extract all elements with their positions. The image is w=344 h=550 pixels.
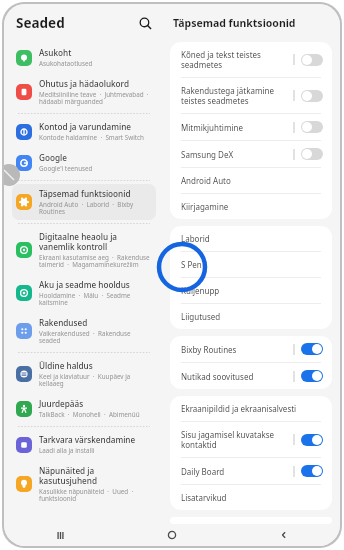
button[interactable]: Nutikad soovitused [170, 363, 332, 389]
staticText: Android Auto · Laborid · Bixby Routines [39, 200, 152, 216]
staticText: Kasulikke näpunäiteid · Uued · funktsioo… [39, 487, 152, 503]
button[interactable]: Täpsemad funktsioonid [12, 184, 156, 220]
button[interactable]: Aku ja seadme hooldus [12, 275, 156, 311]
button[interactable]: Toggle [301, 370, 323, 382]
staticText: Laadi alla ja installi [39, 446, 95, 455]
staticText: Meditsiiniline teave · Juhtmevabad · häd… [39, 90, 152, 106]
staticText: Liigutused [181, 311, 221, 322]
button[interactable]: Liigutused [170, 304, 332, 329]
button[interactable]: Google [12, 148, 156, 177]
button[interactable]: Toggle [301, 343, 323, 355]
staticText: Laborid [181, 233, 210, 244]
staticText: Ohutus ja hädaolukord [39, 78, 129, 89]
button[interactable]: Back [228, 524, 340, 546]
button[interactable]: Näpunäited ja kasutusjuhend [12, 461, 156, 507]
staticText: Aku ja seadme hooldus [39, 279, 130, 290]
button[interactable]: Laborid [170, 226, 332, 251]
staticText: Asukohataotlused [39, 59, 93, 68]
button[interactable]: Kõned ja tekst teistes seadmetes [170, 42, 332, 77]
button[interactable]: Rakendused [12, 313, 156, 349]
staticText: Sisu jagamisel kuvatakse kontaktid [181, 429, 287, 450]
staticText: Täpsemad funktsioonid [39, 188, 131, 199]
button[interactable]: Toggle [301, 148, 323, 160]
staticText: Täpsemad funktsioonid [173, 16, 296, 30]
staticText: Ekraanipildid ja ekraanisalvesti [181, 403, 297, 414]
button[interactable]: Kiirjagamine [170, 194, 332, 219]
button[interactable]: Küljenupp [170, 278, 332, 303]
staticText: Kontod ja varundamine [39, 121, 131, 132]
button[interactable]: Juurdepääs [12, 394, 156, 423]
button[interactable]: Lisatarvikud [170, 485, 332, 510]
staticText: Vaikerakendused · Rakenduse seaded [39, 329, 152, 345]
staticText: Näpunäited ja kasutusjuhend [39, 465, 152, 486]
staticText: Seaded [16, 14, 65, 32]
staticText: Küljenupp [181, 285, 220, 296]
staticText: Google [39, 152, 67, 163]
button[interactable]: Daily Board [170, 458, 332, 484]
button[interactable]: S Pen [170, 252, 332, 277]
button[interactable]: Rakendustega jätkamine teistes seadmetes [170, 78, 332, 113]
staticText: Asukoht [39, 47, 72, 58]
button[interactable]: Tarkvara värskendamine [12, 430, 156, 459]
button[interactable]: Mitmikjuhtimine [170, 114, 332, 140]
button[interactable]: Toggle [301, 121, 323, 133]
button[interactable]: Toggle [301, 90, 323, 102]
staticText: S Pen [181, 259, 202, 270]
staticText: Keel ja klaviatuur · Kuupäev ja kellaaeg [39, 372, 152, 388]
staticText: Tarkvara värskendamine [39, 434, 136, 445]
button[interactable]: Search [134, 12, 156, 34]
button[interactable]: Digitaalne heaolu ja vanemlik kontroll [12, 227, 156, 273]
button[interactable]: Toggle [301, 465, 323, 477]
button[interactable]: Samsung DeX [170, 141, 332, 167]
button[interactable]: Toggle [301, 434, 323, 446]
staticText: Kõned ja tekst teistes seadmetes [181, 49, 287, 70]
staticText: Bixby Routines [181, 344, 237, 355]
button[interactable]: Recents [4, 524, 116, 546]
staticText: Hooldamine · Mälu · Seadme kaitsmine [39, 291, 152, 307]
button[interactable]: Ekraanipildid ja ekraanisalvesti [170, 396, 332, 421]
button[interactable]: Sisu jagamisel kuvatakse kontaktid [170, 422, 332, 457]
staticText: Üldine haldus [39, 360, 93, 371]
staticText: Daily Board [181, 466, 225, 477]
staticText: Kiirjagamine [181, 201, 229, 212]
staticText: Mitmikjuhtimine [181, 122, 243, 133]
staticText: Rakendustega jätkamine teistes seadmetes [181, 85, 287, 106]
staticText: Rakendused [39, 317, 88, 328]
button[interactable]: Üldine haldus [12, 356, 156, 392]
staticText: Digitaalne heaolu ja vanemlik kontroll [39, 231, 152, 252]
button[interactable]: Ohutus ja hädaolukord [12, 74, 156, 110]
button[interactable]: Toggle [301, 54, 323, 66]
staticText: Lisatarvikud [181, 492, 227, 503]
staticText: Kontode haldamine · Smart Switch [39, 133, 144, 142]
button[interactable]: Asukoht [12, 43, 156, 72]
staticText: Ekraani kasutamise aeg · Rakenduse taime… [39, 253, 152, 269]
staticText: Android Auto [181, 175, 231, 186]
button[interactable]: Home [116, 524, 228, 546]
staticText: TalkBack · Monoheli · Abimenüü [39, 410, 140, 419]
staticText: Google'i teenused [39, 164, 93, 173]
button[interactable]: Bixby Routines [170, 336, 332, 362]
button[interactable]: Kontod ja varundamine [12, 117, 156, 146]
staticText: Samsung DeX [181, 149, 234, 160]
button[interactable]: Android Auto [170, 168, 332, 193]
staticText: Juurdepääs [39, 398, 84, 409]
staticText: Nutikad soovitused [181, 371, 254, 382]
